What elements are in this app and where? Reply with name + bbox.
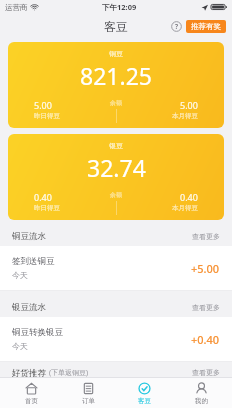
staticText: 821.25 bbox=[80, 60, 152, 91]
staticText: 32.74 bbox=[87, 152, 146, 183]
staticText: 我的 bbox=[195, 397, 208, 405]
staticText: 5.00 bbox=[34, 99, 52, 111]
staticText: 昨日得豆 bbox=[34, 112, 60, 120]
staticText: 好货推荐 bbox=[12, 368, 46, 377]
button[interactable]: 我的 bbox=[175, 378, 227, 408]
staticText: +5.00 bbox=[191, 261, 220, 276]
staticText: 本月得豆 bbox=[172, 112, 198, 120]
staticText: 余额 bbox=[110, 99, 122, 107]
staticText: 0.40 bbox=[180, 191, 198, 203]
staticText: 银豆 bbox=[109, 141, 123, 150]
staticText: 银豆流水 bbox=[12, 302, 46, 313]
staticText: 今天 bbox=[12, 341, 28, 351]
button[interactable]: 首页 bbox=[5, 378, 57, 408]
staticText: 订单 bbox=[82, 397, 95, 405]
button[interactable]: 查看更多 bbox=[192, 232, 220, 241]
button[interactable]: 签到送铜豆 bbox=[0, 246, 232, 291]
staticText: 客豆 bbox=[104, 19, 128, 34]
staticText: 下午12:09 bbox=[102, 2, 137, 12]
button[interactable]: 铜豆转换银豆 bbox=[0, 317, 232, 362]
staticText: 铜豆流水 bbox=[12, 231, 46, 242]
staticText: (下单返铜豆) bbox=[49, 368, 89, 377]
button[interactable]: 查看更多 bbox=[192, 368, 220, 377]
button[interactable]: 铜豆 bbox=[8, 42, 224, 128]
staticText: 首页 bbox=[25, 397, 38, 405]
staticText: 余额 bbox=[110, 191, 122, 199]
staticText: 5.00 bbox=[180, 99, 198, 111]
button[interactable]: 客豆 bbox=[118, 378, 170, 408]
button[interactable]: 订单 bbox=[62, 378, 114, 408]
staticText: ? bbox=[175, 22, 179, 31]
staticText: 铜豆 bbox=[109, 49, 123, 58]
staticText: 推荐有奖 bbox=[191, 22, 221, 31]
staticText: 本月得豆 bbox=[172, 204, 198, 212]
staticText: 客豆 bbox=[138, 397, 151, 405]
staticText: 运营商 bbox=[5, 3, 28, 12]
staticText: 今天 bbox=[12, 270, 28, 280]
staticText: 0.40 bbox=[34, 191, 52, 203]
staticText: 铜豆转换银豆 bbox=[12, 327, 63, 338]
staticText: 签到送铜豆 bbox=[12, 256, 55, 267]
staticText: 查看更多 bbox=[192, 303, 220, 312]
button[interactable]: 银豆 bbox=[8, 134, 224, 220]
staticText: 查看更多 bbox=[192, 368, 220, 377]
button[interactable]: 帮助 bbox=[171, 21, 182, 32]
staticText: +0.40 bbox=[191, 332, 220, 347]
button[interactable]: 推荐有奖 bbox=[186, 20, 226, 33]
staticText: 查看更多 bbox=[192, 232, 220, 241]
staticText: 昨日得豆 bbox=[34, 204, 60, 212]
button[interactable]: 查看更多 bbox=[192, 303, 220, 312]
